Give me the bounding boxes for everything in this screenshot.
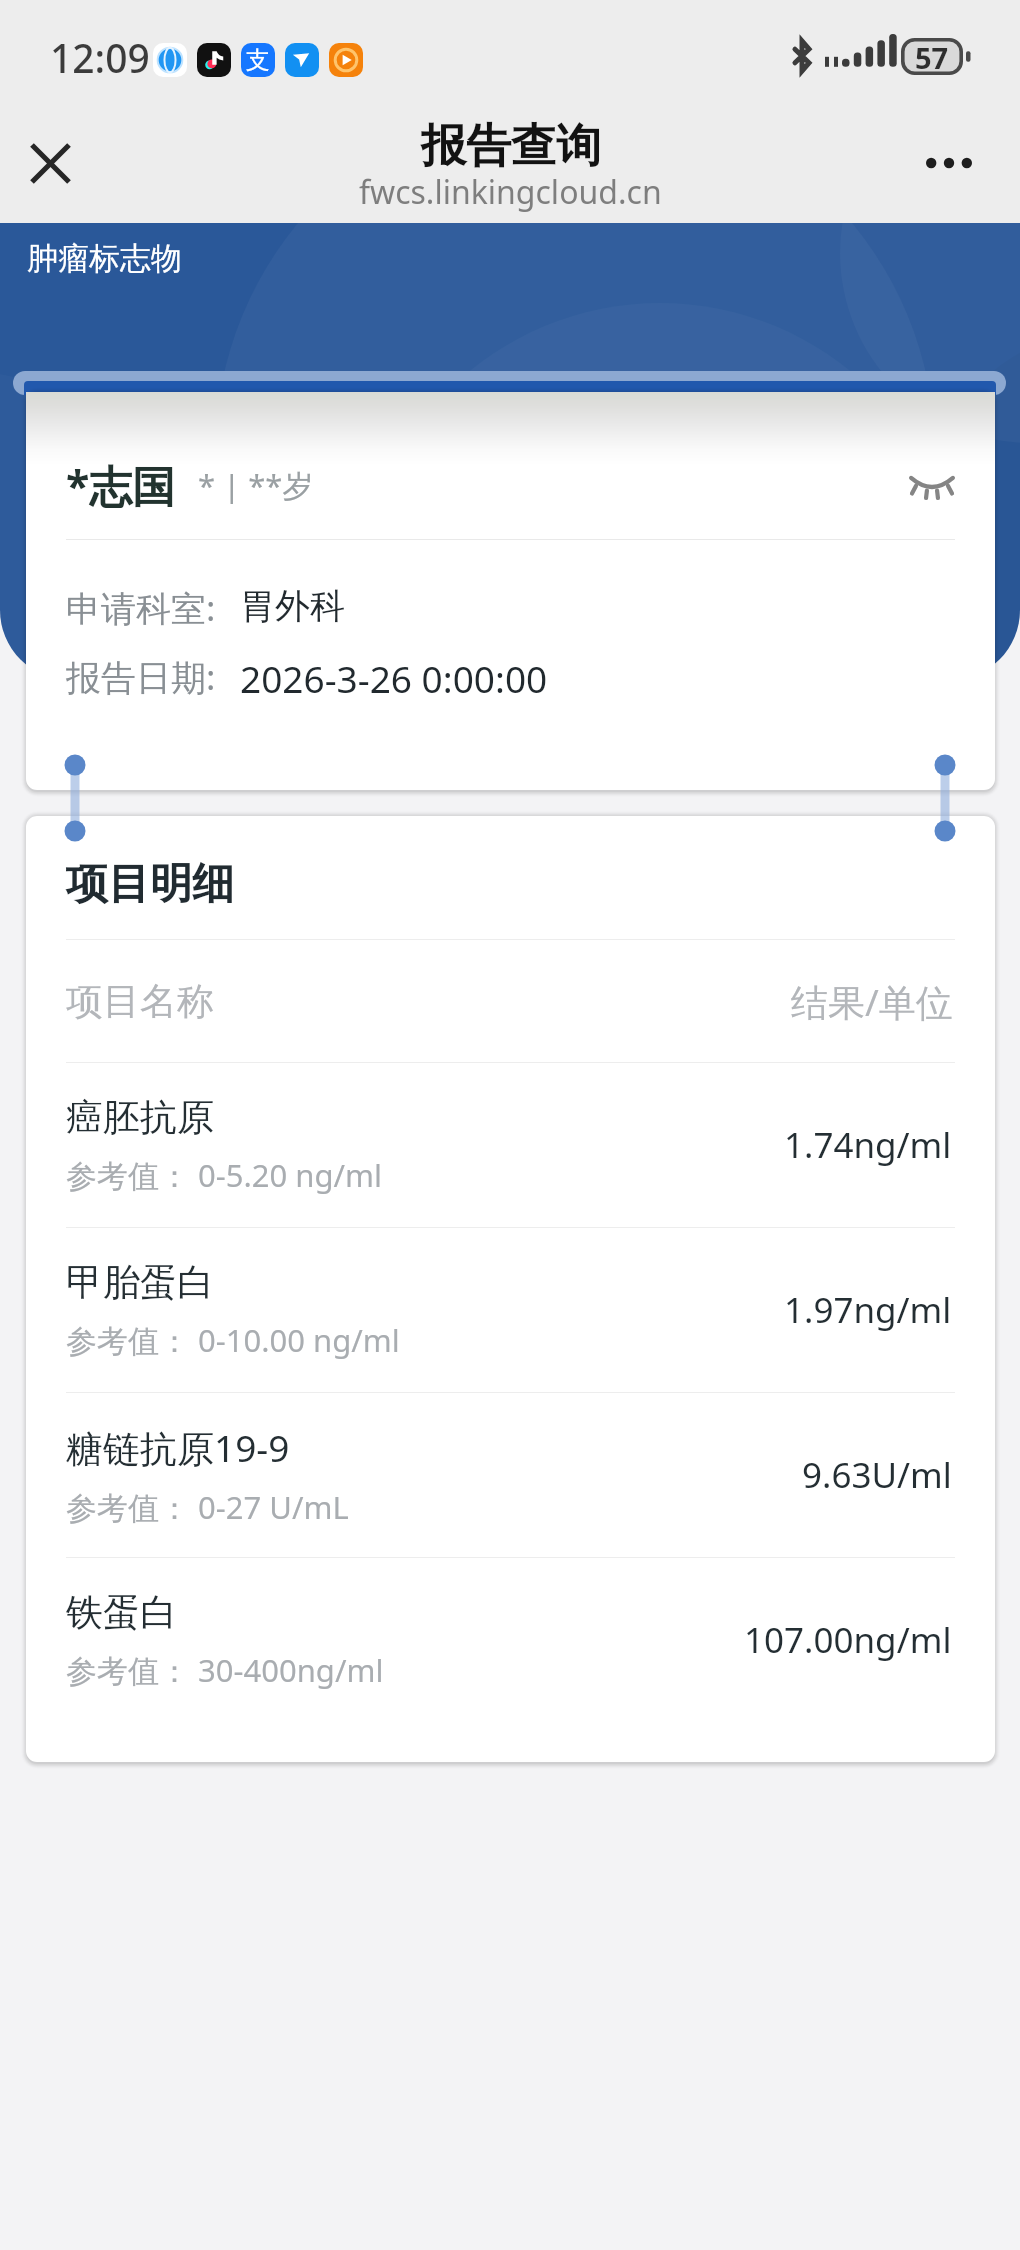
staticText: 参考值： 0-5.20 ng/ml	[66, 1154, 383, 1196]
staticText: * | **岁	[198, 464, 314, 506]
staticText: 107.00ng/ml	[744, 1616, 952, 1664]
staticText: 癌胚抗原	[66, 1094, 214, 1141]
staticText: 参考值： 0-27 U/mL	[66, 1486, 349, 1528]
staticText: 参考值： 0-10.00 ng/ml	[66, 1319, 400, 1361]
button[interactable]: More options	[914, 128, 984, 198]
staticText: 报告日期:	[66, 653, 216, 701]
staticText: 参考值： 30-400ng/ml	[66, 1649, 384, 1691]
button[interactable]: 癌胚抗原	[26, 1063, 995, 1227]
staticText: 报告查询	[421, 118, 601, 175]
staticText: 结果/单位	[791, 976, 953, 1027]
button[interactable]: 铁蛋白	[26, 1558, 995, 1722]
staticText: 支	[246, 45, 270, 75]
staticText: 肿瘤标志物	[27, 239, 182, 278]
staticText: 1.74ng/ml	[784, 1121, 952, 1169]
staticText: 57	[915, 38, 949, 75]
staticText: 2026-3-26 0:00:00	[240, 653, 548, 703]
staticText: 铁蛋白	[66, 1589, 177, 1636]
button[interactable]: Close	[14, 127, 87, 200]
staticText: 申请科室:	[66, 584, 216, 632]
staticText: 12:09	[50, 31, 150, 84]
staticText: 糖链抗原19-9	[66, 1422, 290, 1473]
button[interactable]: 糖链抗原19-9	[26, 1393, 995, 1557]
staticText: 9.63U/ml	[802, 1451, 952, 1499]
staticText: 项目名称	[66, 978, 214, 1025]
button[interactable]: 甲胎蛋白	[26, 1228, 995, 1392]
staticText: *志国	[66, 456, 176, 515]
staticText: 甲胎蛋白	[66, 1259, 214, 1306]
staticText: fwcs.linkingcloud.cn	[359, 170, 662, 214]
staticText: 1.97ng/ml	[784, 1286, 952, 1334]
staticText: 胃外科	[240, 584, 345, 628]
staticText: 项目明细	[66, 858, 234, 911]
button[interactable]: Hide patient info	[902, 455, 962, 515]
